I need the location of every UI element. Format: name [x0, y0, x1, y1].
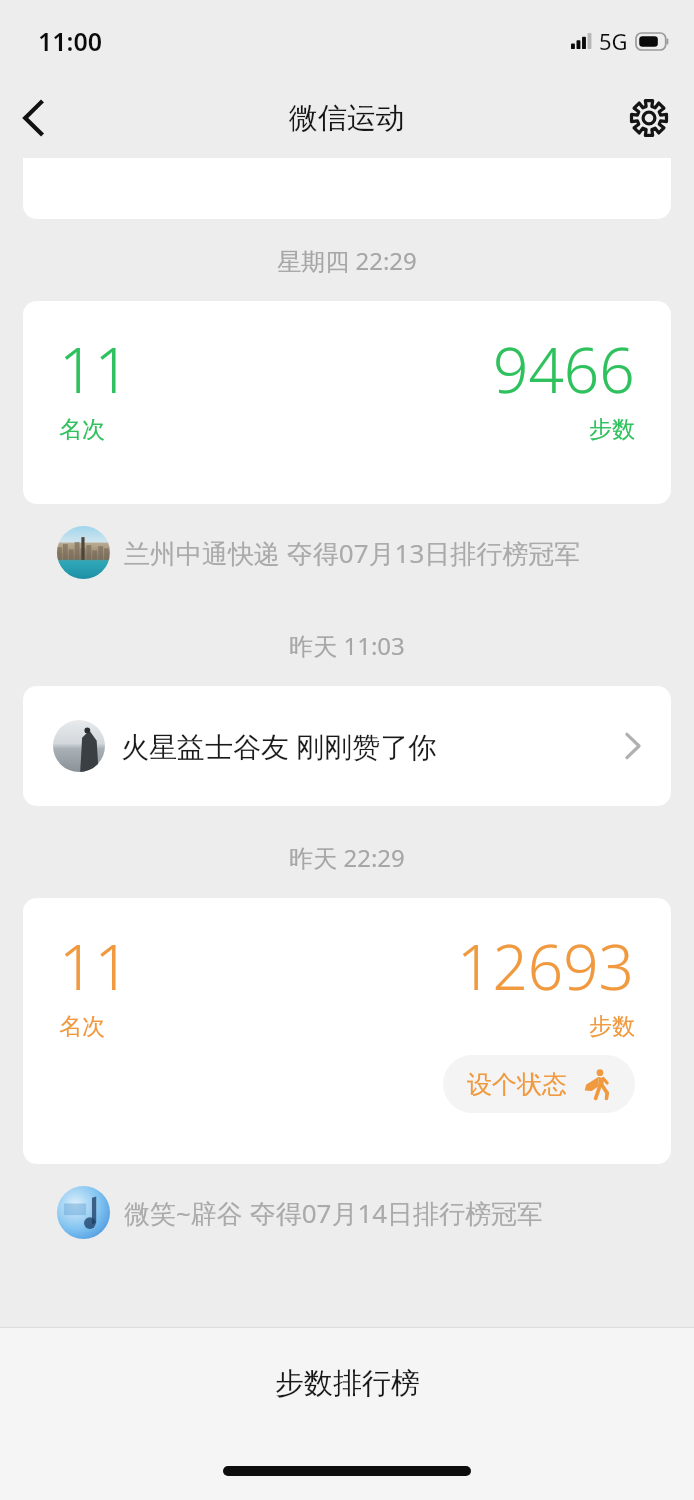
- staticText: 昨天 22:29: [0, 841, 694, 874]
- staticText: 微信运动: [289, 100, 405, 137]
- staticText: 火星益士谷友 刚刚赞了你: [121, 727, 437, 765]
- staticText: 星期四 22:29: [0, 244, 694, 277]
- button[interactable]: Settings: [616, 85, 682, 151]
- staticText: 步数排行榜: [275, 1365, 420, 1402]
- button[interactable]: 11: [23, 301, 671, 504]
- staticText: 12693: [457, 924, 635, 1008]
- staticText: 步数: [589, 415, 635, 444]
- button[interactable]: 火星益士谷友 刚刚赞了你: [23, 686, 671, 806]
- staticText: 步数: [589, 1012, 635, 1041]
- button[interactable]: 步数排行榜: [0, 1328, 694, 1438]
- staticText: 11:00: [38, 24, 103, 58]
- button[interactable]: 微笑~辟谷 夺得07月14日排行榜冠军: [0, 1176, 694, 1249]
- staticText: 名次: [59, 1012, 105, 1041]
- staticText: 兰州中通快递 夺得07月13日排行榜冠军: [124, 535, 581, 571]
- staticText: 昨天 11:03: [0, 629, 694, 662]
- staticText: 11: [59, 327, 130, 411]
- staticText: 9466: [493, 327, 635, 411]
- staticText: 设个状态: [467, 1069, 567, 1100]
- staticText: 微笑~辟谷 夺得07月14日排行榜冠军: [124, 1195, 544, 1231]
- staticText: 11: [59, 924, 130, 1008]
- staticText: 5G: [599, 26, 628, 56]
- button[interactable]: 11: [23, 898, 671, 1164]
- button[interactable]: Back: [0, 84, 68, 152]
- button[interactable]: 兰州中通快递 夺得07月13日排行榜冠军: [0, 516, 694, 589]
- staticText: 名次: [59, 415, 105, 444]
- button[interactable]: 设个状态: [443, 1055, 635, 1113]
